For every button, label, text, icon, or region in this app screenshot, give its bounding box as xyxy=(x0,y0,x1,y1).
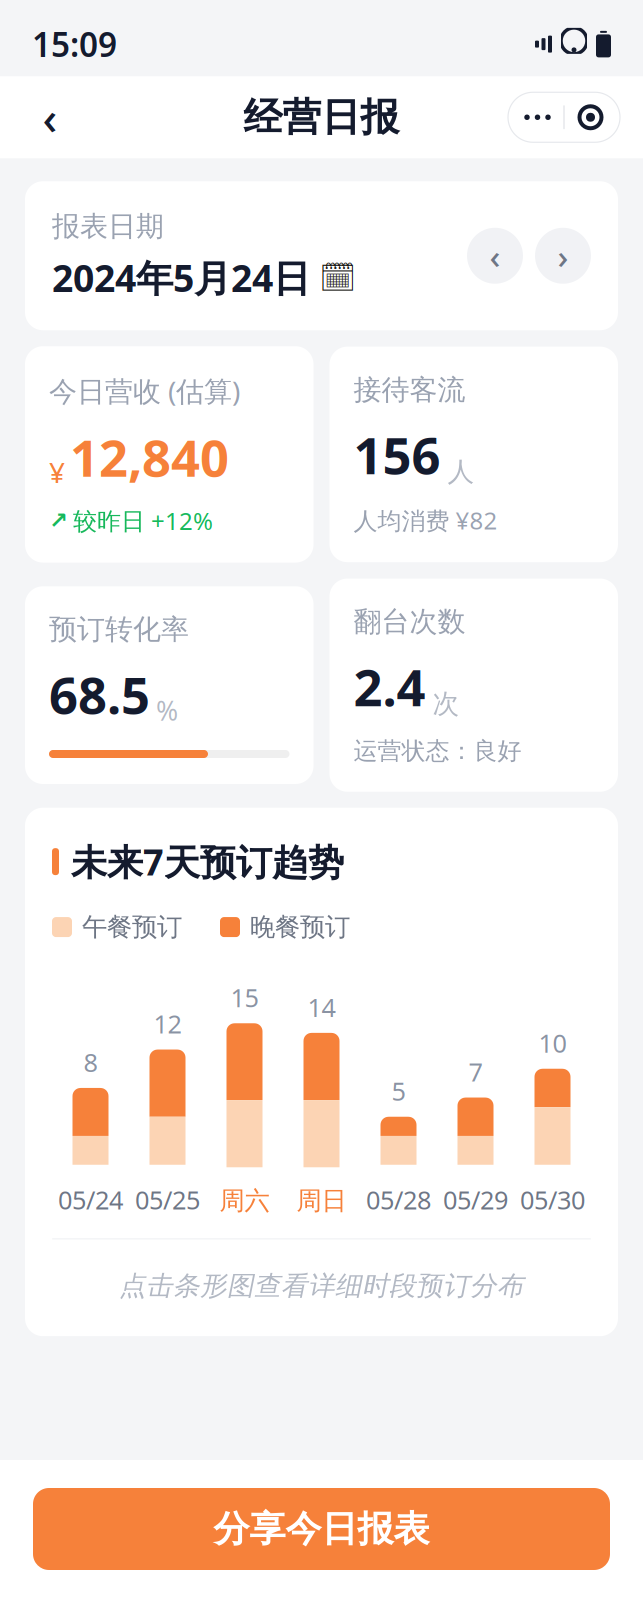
button[interactable]: 7 xyxy=(437,1055,514,1216)
button[interactable]: 预订转化率 xyxy=(25,586,313,784)
button[interactable]: 5 xyxy=(360,1074,437,1216)
button[interactable]: 8 xyxy=(52,1045,129,1216)
staticText: 未来7天预订趋势 xyxy=(71,838,344,885)
button[interactable]: 翻台次数 xyxy=(329,579,618,792)
staticText: 15:09 xyxy=(32,22,117,66)
staticText: 68.5 xyxy=(49,661,150,728)
button[interactable]: 分享今日报表 xyxy=(33,1488,610,1570)
staticText: ‹ xyxy=(42,87,57,147)
staticText: ‹ xyxy=(489,234,500,278)
button[interactable]: 更多操作 xyxy=(508,92,620,142)
staticText: 14 xyxy=(307,990,335,1024)
staticText: 15 xyxy=(230,981,258,1014)
staticText: 翻台次数 xyxy=(353,605,465,639)
staticText: 今日营收 (估算) xyxy=(49,372,240,409)
staticText: 较昨日 +12% xyxy=(73,505,213,537)
button[interactable]: 今日营收 (估算) xyxy=(25,346,313,562)
staticText: 午餐预订 xyxy=(82,911,182,943)
button[interactable]: 后一天 xyxy=(535,228,591,284)
staticText: 7 xyxy=(468,1055,482,1088)
button[interactable]: 15 xyxy=(206,981,283,1216)
staticText: 2.4 xyxy=(353,653,425,720)
staticText: 2024年5月24日 xyxy=(52,253,310,302)
staticText: 人均消费 ¥82 xyxy=(353,504,497,536)
staticText: ¥ xyxy=(49,453,65,491)
staticText: 10 xyxy=(538,1026,566,1060)
staticText: 人 xyxy=(447,455,474,488)
staticText: 05/30 xyxy=(520,1183,585,1216)
staticText: 12,840 xyxy=(70,423,229,491)
staticText: 🗓 xyxy=(319,261,356,294)
staticText: % xyxy=(156,693,178,728)
staticText: 报表日期 xyxy=(52,209,164,244)
staticText: 05/29 xyxy=(443,1183,508,1216)
staticText: 周日 xyxy=(296,1185,346,1216)
staticText: 运营状态：良好 xyxy=(353,736,521,766)
staticText: 12 xyxy=(153,1007,181,1040)
staticText: ↗ xyxy=(49,508,68,533)
staticText: 8 xyxy=(83,1045,97,1079)
staticText: 接待客流 xyxy=(353,373,465,407)
button[interactable]: 12 xyxy=(129,1007,206,1216)
staticText: 5 xyxy=(391,1074,405,1108)
staticText: 预订转化率 xyxy=(49,612,189,647)
button[interactable]: 前一天 xyxy=(467,228,523,284)
staticText: 分享今日报表 xyxy=(213,1507,429,1551)
staticText: 经营日报 xyxy=(243,93,399,141)
staticText: 点击条形图查看详细时段预订分布 xyxy=(119,1269,524,1302)
staticText: › xyxy=(557,234,568,278)
button[interactable]: 接待客流 xyxy=(329,347,618,562)
staticText: 晚餐预订 xyxy=(250,911,350,943)
staticText: 05/24 xyxy=(58,1183,123,1216)
staticText: 次 xyxy=(432,687,459,720)
button[interactable]: 14 xyxy=(283,990,360,1216)
button[interactable]: 10 xyxy=(514,1026,591,1216)
staticText: 周六 xyxy=(219,1185,269,1216)
staticText: 05/25 xyxy=(135,1183,200,1216)
button[interactable]: 返回 xyxy=(23,90,77,144)
staticText: 05/28 xyxy=(366,1183,431,1216)
staticText: 156 xyxy=(353,421,440,488)
